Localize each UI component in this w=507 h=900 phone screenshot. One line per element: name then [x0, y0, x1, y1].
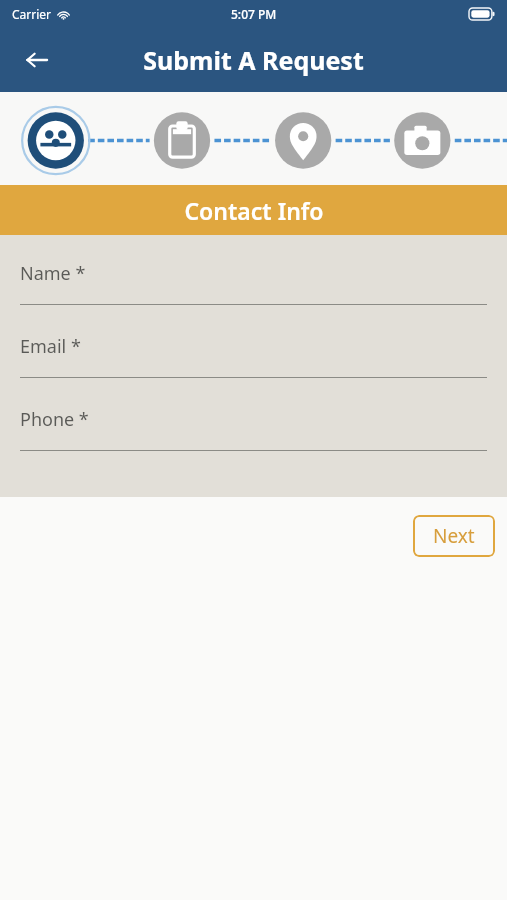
staticText: Name *: [20, 261, 86, 286]
staticText: 5:07 PM: [231, 6, 277, 22]
staticText: Phone *: [20, 407, 89, 432]
button[interactable]: Photo step: [392, 109, 452, 169]
button[interactable]: Back: [14, 37, 60, 83]
button[interactable]: Next: [413, 515, 495, 557]
button[interactable]: Details step: [152, 109, 212, 169]
staticText: Submit A Request: [143, 43, 364, 77]
button[interactable]: Location step: [273, 109, 333, 169]
button[interactable]: Contact Info step: [26, 109, 86, 169]
button[interactable]: Email *: [20, 334, 487, 378]
staticText: Email *: [20, 334, 81, 359]
button[interactable]: Name *: [20, 261, 487, 305]
staticText: Contact Info: [184, 195, 324, 226]
button[interactable]: Phone *: [20, 407, 487, 451]
staticText: Next: [433, 523, 475, 549]
staticText: Carrier: [12, 6, 52, 22]
